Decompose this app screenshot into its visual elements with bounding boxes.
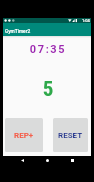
staticText: REP+: [14, 131, 34, 140]
button[interactable]: RESET: [53, 118, 88, 152]
button[interactable]: Recents: [65, 156, 79, 165]
staticText: 07:35: [4, 43, 92, 56]
button[interactable]: REP+: [5, 118, 43, 152]
staticText: GymTimer2: [5, 29, 31, 35]
button[interactable]: Home: [40, 156, 54, 165]
staticText: 5: [4, 77, 92, 102]
staticText: 1:04: [82, 18, 90, 23]
button[interactable]: Back: [15, 156, 29, 165]
staticText: RESET: [58, 131, 83, 140]
